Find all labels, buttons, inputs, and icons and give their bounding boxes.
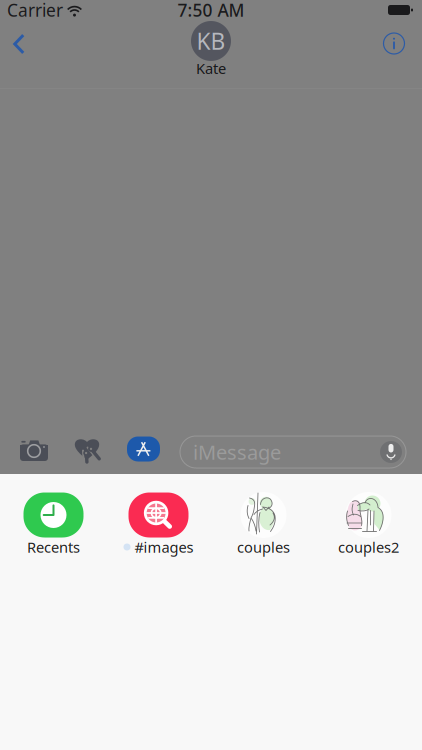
staticText: Recents — [27, 537, 80, 557]
button[interactable]: KB — [156, 21, 266, 77]
button[interactable]: Digital Touch — [65, 427, 109, 471]
staticText: couples — [237, 537, 290, 557]
button[interactable]: #images — [106, 492, 211, 556]
staticText: couples2 — [338, 537, 399, 557]
staticText: #images — [134, 537, 193, 557]
staticText: iMessage — [193, 439, 281, 465]
staticText: Kate — [196, 58, 226, 78]
staticText: 7:50 AM — [177, 0, 244, 21]
button[interactable]: couples — [211, 492, 316, 556]
staticText: Carrier — [7, 0, 63, 21]
staticText: KB — [196, 26, 225, 56]
button[interactable]: App Store — [121, 427, 165, 471]
button[interactable]: couples2 — [316, 492, 421, 556]
button[interactable]: Back — [0, 22, 38, 66]
button[interactable]: Camera — [12, 427, 56, 471]
button[interactable]: Details — [375, 21, 413, 65]
button[interactable]: Recents — [1, 492, 106, 556]
button[interactable]: iMessage — [180, 436, 406, 468]
